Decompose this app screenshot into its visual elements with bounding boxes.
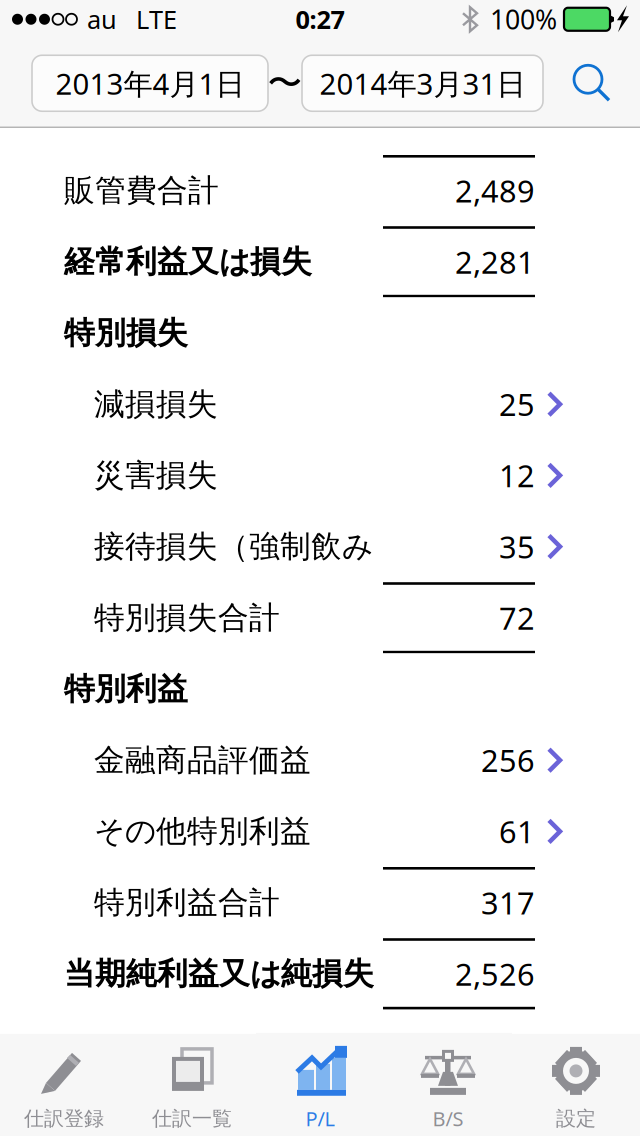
staticText: 35 bbox=[499, 526, 535, 567]
staticText: 2,526 bbox=[455, 953, 535, 995]
button[interactable]: P/L bbox=[256, 1037, 384, 1136]
staticText: 販管費合計 bbox=[64, 171, 219, 210]
button[interactable]: Search bbox=[562, 53, 622, 113]
staticText: 接待損失（強制飲み bbox=[94, 527, 373, 566]
button[interactable]: B/S bbox=[384, 1037, 512, 1136]
staticText: 金融商品評価益 bbox=[94, 741, 311, 779]
staticText: 〜 bbox=[267, 61, 302, 105]
staticText: 仕訳一覧 bbox=[152, 1106, 232, 1131]
staticText: 特別損失合計 bbox=[94, 598, 280, 637]
button[interactable]: 接待損失（強制飲み bbox=[0, 511, 640, 582]
button[interactable]: 2013年4月1日 bbox=[32, 55, 268, 111]
staticText: 25 bbox=[499, 383, 535, 425]
staticText: 2013年4月1日 bbox=[55, 63, 244, 103]
button[interactable]: 仕訳一覧 bbox=[128, 1037, 256, 1136]
staticText: 当期純利益又は純損失 bbox=[64, 954, 374, 993]
staticText: 特別利益 bbox=[64, 670, 188, 708]
button[interactable]: 災害損失 bbox=[0, 440, 640, 511]
staticText: 特別利益合計 bbox=[94, 883, 280, 922]
staticText: 災害損失 bbox=[94, 456, 218, 495]
staticText: 減損損失 bbox=[94, 385, 218, 423]
staticText: 経常利益又は損失 bbox=[64, 242, 312, 281]
staticText: 100% bbox=[490, 1, 557, 37]
staticText: 0:27 bbox=[295, 2, 344, 36]
staticText: 12 bbox=[499, 454, 535, 496]
staticText: 72 bbox=[499, 597, 535, 639]
staticText: LTE bbox=[136, 2, 177, 36]
button[interactable]: 設定 bbox=[512, 1037, 640, 1136]
staticText: 仕訳登録 bbox=[24, 1106, 104, 1131]
button[interactable]: 減損損失 bbox=[0, 369, 640, 440]
staticText: au bbox=[87, 2, 117, 36]
button[interactable]: 2014年3月31日 bbox=[302, 55, 543, 111]
button[interactable]: その他特別利益 bbox=[0, 796, 640, 867]
staticText: 2,281 bbox=[455, 241, 535, 283]
staticText: 設定 bbox=[556, 1106, 596, 1131]
button[interactable]: 金融商品評価益 bbox=[0, 725, 640, 796]
staticText: 61 bbox=[499, 810, 535, 852]
staticText: 2,489 bbox=[455, 170, 535, 211]
staticText: その他特別利益 bbox=[94, 812, 311, 851]
staticText: 256 bbox=[481, 739, 535, 781]
staticText: P/L bbox=[305, 1105, 334, 1132]
staticText: B/S bbox=[432, 1105, 463, 1132]
staticText: 2014年3月31日 bbox=[319, 63, 525, 103]
staticText: 317 bbox=[481, 882, 535, 923]
staticText: 特別損失 bbox=[64, 314, 188, 352]
button[interactable]: 仕訳登録 bbox=[0, 1037, 128, 1136]
